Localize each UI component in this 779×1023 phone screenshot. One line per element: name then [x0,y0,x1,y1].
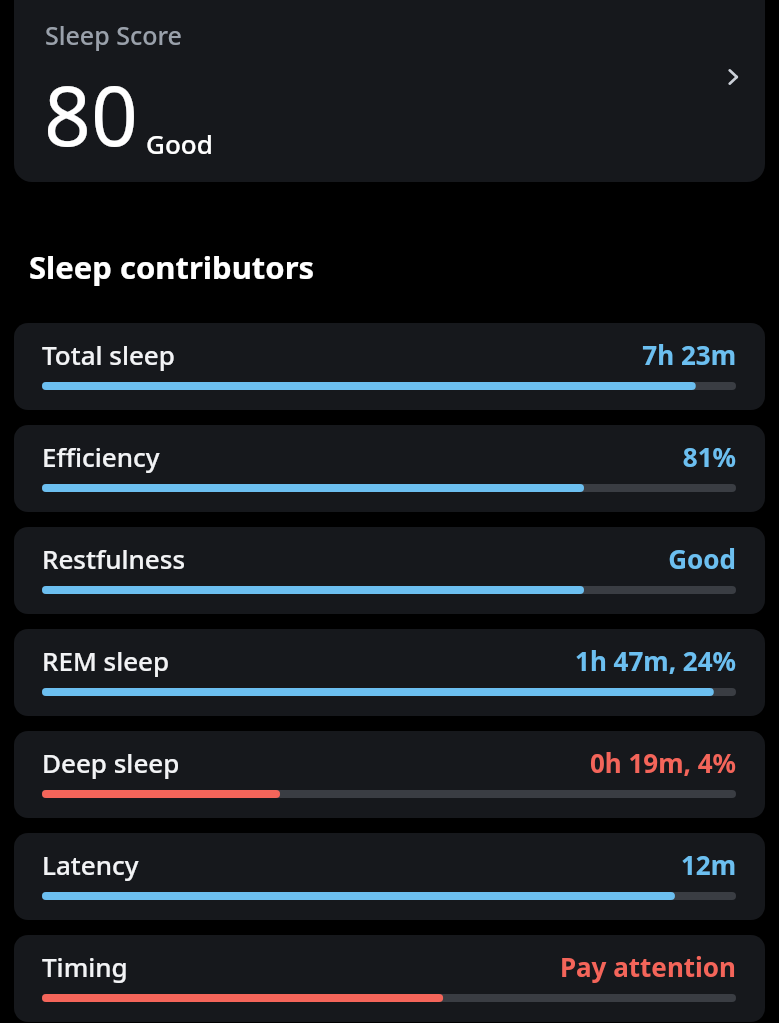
button[interactable]: Total sleep [14,323,765,410]
button[interactable]: Deep sleep [14,731,765,818]
button[interactable]: Open sleep score details [709,53,757,101]
staticText: Restfulness [42,541,186,576]
staticText: 1h 47m, 24% [575,643,736,678]
button[interactable]: Latency [14,833,765,920]
button[interactable]: Restfulness [14,527,765,614]
staticText: 81% [682,439,736,474]
staticText: Timing [42,949,128,984]
staticText: Sleep contributors [29,246,315,288]
button[interactable]: REM sleep [14,629,765,716]
staticText: Good [146,126,213,161]
staticText: REM sleep [42,643,170,678]
staticText: Pay attention [559,949,736,984]
button[interactable]: Efficiency [14,425,765,512]
button[interactable]: Sleep Score [14,0,765,182]
staticText: Efficiency [42,439,160,474]
staticText: Sleep Score [45,18,182,52]
staticText: Deep sleep [42,745,180,780]
staticText: 80 [44,58,138,170]
staticText: 7h 23m [642,337,736,372]
staticText: 12m [680,847,736,882]
staticText: Good [668,541,736,576]
staticText: Total sleep [42,337,175,372]
staticText: Latency [42,847,139,882]
button[interactable]: Timing [14,935,765,1022]
staticText: 0h 19m, 4% [589,745,736,780]
